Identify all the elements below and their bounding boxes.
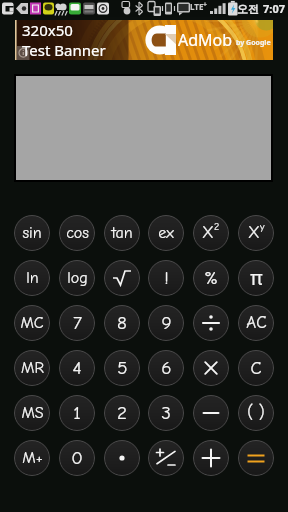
button[interactable]: sqrt — [104, 260, 140, 296]
staticText: log — [67, 269, 88, 287]
staticText: 오전 — [237, 2, 259, 16]
staticText: cos — [66, 224, 89, 242]
staticText: MC — [20, 314, 44, 332]
button[interactable]: X — [193, 215, 229, 251]
button[interactable]: sin — [14, 215, 50, 251]
button[interactable]: 4 — [59, 350, 95, 386]
button[interactable]: 6 — [148, 350, 184, 386]
button[interactable]: ( ) — [238, 395, 274, 431]
staticText: + — [203, 0, 208, 10]
staticText: 7 — [73, 312, 82, 334]
button[interactable]: ! — [148, 260, 184, 296]
staticText: ex — [158, 224, 174, 242]
staticText: 2 — [117, 402, 127, 424]
staticText: C — [250, 358, 262, 379]
staticText: 0 — [71, 447, 83, 469]
button[interactable]: MS — [14, 395, 50, 431]
button[interactable]: M+ — [14, 440, 50, 476]
button[interactable]: dot — [104, 440, 140, 476]
button[interactable]: C — [238, 350, 274, 386]
button[interactable]: 1 — [59, 395, 95, 431]
staticText: MR — [21, 359, 44, 377]
staticText: LTE — [190, 1, 204, 12]
button[interactable]: MR — [14, 350, 50, 386]
button[interactable]: AC — [238, 305, 274, 341]
button[interactable]: ex — [148, 215, 184, 251]
staticText: X — [202, 223, 214, 243]
staticText: by Google — [236, 38, 271, 48]
staticText: Test Banner — [22, 40, 106, 60]
staticText: AC — [246, 313, 267, 333]
button[interactable]: plusminus — [148, 440, 184, 476]
button[interactable]: cos — [59, 215, 95, 251]
staticText: X — [248, 223, 260, 243]
button[interactable]: 9 — [148, 305, 184, 341]
staticText: % — [204, 267, 218, 289]
button[interactable]: X — [238, 215, 274, 251]
staticText: 320x50 — [22, 20, 73, 40]
staticText: AdMob — [178, 29, 233, 51]
staticText: M+ — [22, 449, 43, 467]
staticText: y — [260, 221, 265, 233]
button[interactable]: tan — [104, 215, 140, 251]
staticText: 7:07 — [263, 1, 285, 16]
button[interactable]: minus — [193, 395, 229, 431]
staticText: MS — [21, 404, 44, 422]
button[interactable]: 2 — [104, 395, 140, 431]
staticText: π — [250, 265, 263, 291]
button[interactable]: 8 — [104, 305, 140, 341]
button[interactable]: MC — [14, 305, 50, 341]
staticText: 8 — [117, 312, 127, 334]
button[interactable]: 7 — [59, 305, 95, 341]
staticText: 9 — [161, 312, 172, 334]
staticText: ! — [164, 268, 169, 289]
button[interactable]: 3 — [148, 395, 184, 431]
staticText: sin — [22, 224, 42, 242]
staticText: 1 — [73, 402, 81, 424]
button[interactable]: multiply — [193, 350, 229, 386]
button[interactable]: π — [238, 260, 274, 296]
button[interactable]: 5 — [104, 350, 140, 386]
button[interactable]: equals — [238, 440, 274, 476]
button[interactable]: ln — [14, 260, 50, 296]
staticText: ln — [26, 269, 39, 287]
button[interactable]: 0 — [59, 440, 95, 476]
button[interactable]: Advertisement — [15, 20, 273, 60]
button[interactable]: log — [59, 260, 95, 296]
button[interactable]: % — [193, 260, 229, 296]
staticText: 4 — [72, 357, 82, 379]
staticText: 6 — [161, 357, 172, 379]
staticText: tan — [111, 224, 133, 242]
button[interactable]: divide — [193, 305, 229, 341]
staticText: ( ) — [247, 403, 265, 423]
staticText: 5 — [117, 357, 128, 379]
staticText: 2 — [214, 221, 220, 233]
staticText: 3 — [161, 402, 171, 424]
button[interactable]: plus — [193, 440, 229, 476]
